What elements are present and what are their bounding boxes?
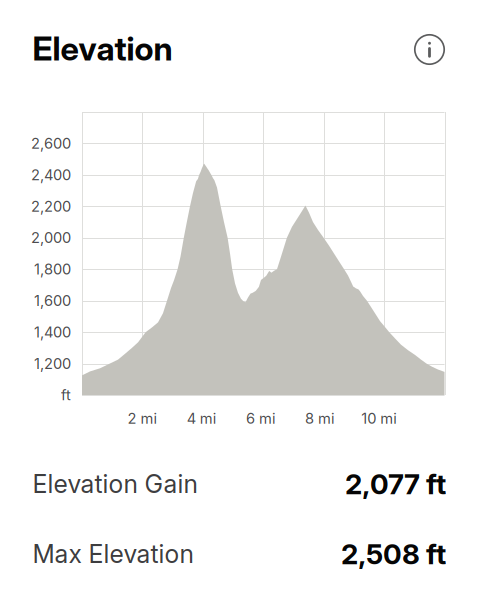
staticText: 2,200: [31, 197, 71, 215]
staticText: 2,077 ft: [345, 467, 446, 501]
staticText: 4 mi: [187, 410, 217, 427]
button[interactable]: Elevation Gain: [0, 452, 477, 516]
staticText: 2 mi: [127, 410, 157, 427]
staticText: 8 mi: [305, 410, 335, 427]
staticText: Max Elevation: [32, 539, 193, 569]
staticText: 2,000: [31, 229, 71, 247]
staticText: Elevation Gain: [32, 469, 197, 499]
staticText: 6 mi: [246, 410, 276, 427]
staticText: 1,400: [34, 323, 71, 341]
staticText: 1,600: [34, 292, 71, 309]
button[interactable]: About elevation: [407, 27, 451, 71]
staticText: Elevation: [32, 29, 172, 68]
staticText: 2,400: [31, 166, 71, 184]
staticText: 2,600: [31, 135, 71, 152]
staticText: 2,508 ft: [341, 537, 446, 571]
button[interactable]: Max Elevation: [0, 522, 477, 586]
staticText: 1,200: [34, 355, 71, 372]
staticText: 1,800: [34, 260, 71, 278]
staticText: ft: [61, 386, 71, 404]
staticText: 10 mi: [361, 410, 397, 427]
